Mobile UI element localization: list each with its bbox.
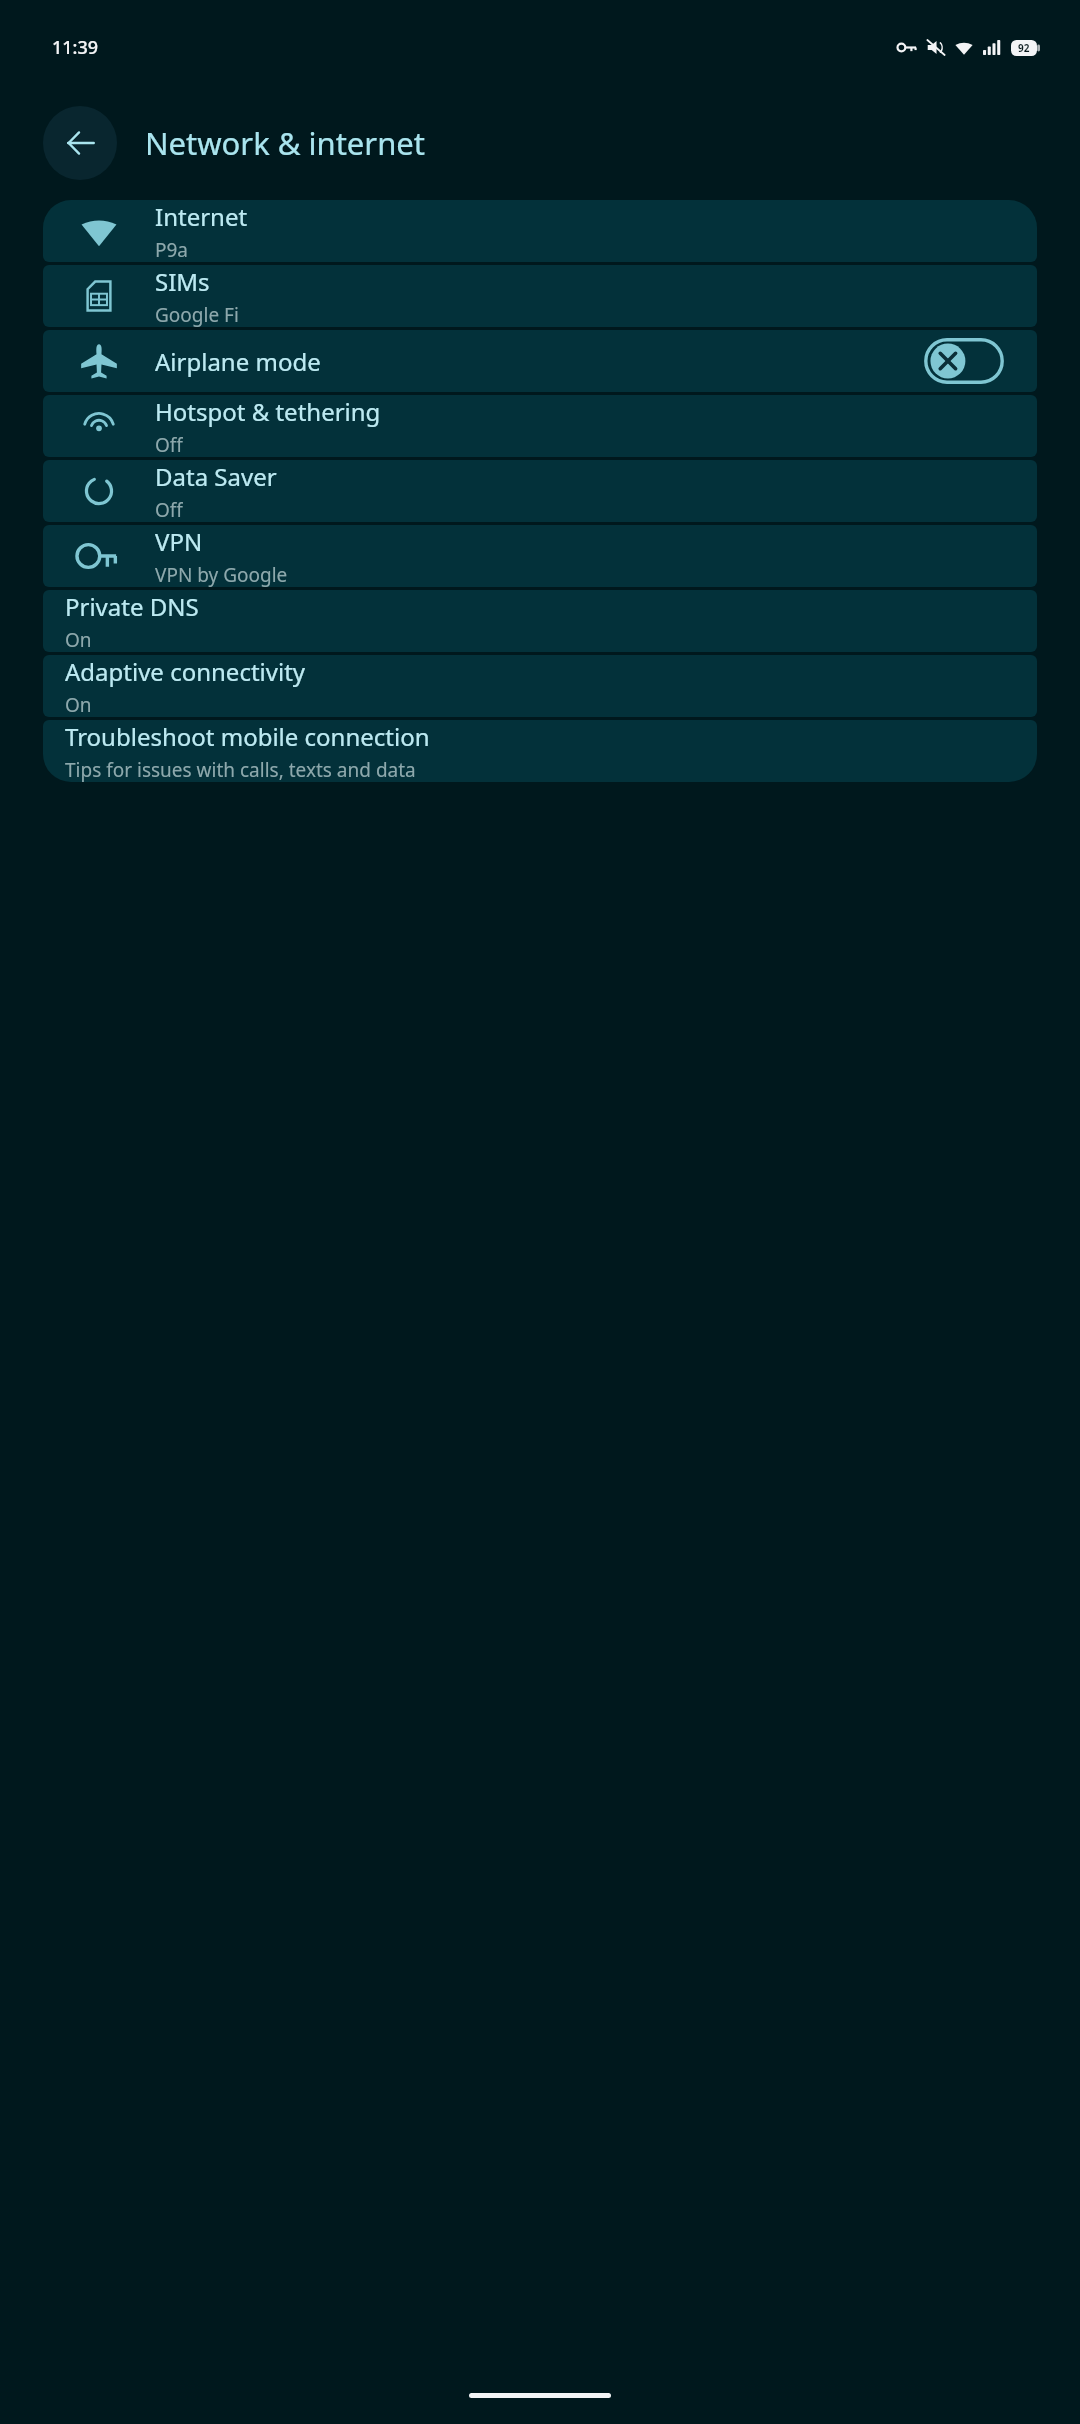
button[interactable]: Airplane mode toggle, off	[924, 338, 1004, 384]
staticText: Off	[155, 497, 183, 522]
other: VPN	[43, 537, 155, 575]
other: SIM card	[43, 277, 155, 315]
staticText: Google Fi	[155, 302, 239, 327]
staticText: Data Saver	[155, 460, 277, 493]
other: Data Saver	[43, 472, 155, 510]
staticText: On	[65, 627, 92, 652]
staticText: 11:39	[52, 35, 99, 60]
staticText: Private DNS	[65, 590, 199, 623]
button[interactable]: Data Saver	[43, 460, 1037, 522]
staticText: Troubleshoot mobile connection	[65, 720, 430, 753]
other: Airplane	[43, 342, 155, 380]
other: Hotspot	[43, 407, 155, 445]
staticText: On	[65, 692, 92, 717]
staticText: Tips for issues with calls, texts and da…	[65, 757, 416, 782]
staticText: SIMs	[155, 265, 210, 298]
staticText: 92	[1018, 41, 1030, 55]
button[interactable]: Back	[43, 106, 117, 180]
staticText: Hotspot & tethering	[155, 395, 381, 428]
button[interactable]: VPN	[43, 525, 1037, 587]
button[interactable]: Hotspot	[43, 395, 1037, 457]
other: Wi-Fi	[43, 212, 155, 250]
button[interactable]: Airplane	[43, 330, 1037, 392]
staticText: Off	[155, 432, 183, 457]
staticText: Airplane mode	[155, 345, 321, 378]
staticText: Adaptive connectivity	[65, 655, 306, 688]
button[interactable]: Troubleshoot mobile connection	[43, 720, 1037, 782]
button[interactable]: Adaptive connectivity	[43, 655, 1037, 717]
staticText: VPN	[155, 525, 203, 558]
staticText: VPN by Google	[155, 562, 288, 587]
staticText: Internet	[155, 200, 248, 233]
button[interactable]: Private DNS	[43, 590, 1037, 652]
staticText: Network & internet	[145, 122, 425, 164]
staticText: P9a	[155, 237, 189, 262]
button[interactable]: SIM card	[43, 265, 1037, 327]
button[interactable]: Wi-Fi	[43, 200, 1037, 262]
